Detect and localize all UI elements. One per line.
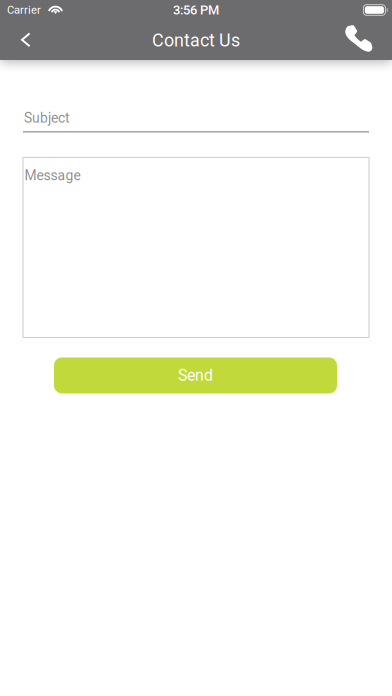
button[interactable]: Send: [54, 357, 337, 393]
staticText: Contact Us: [152, 30, 240, 51]
button[interactable]: Back: [2, 20, 40, 60]
staticText: Subject: [24, 110, 70, 126]
staticText: Message: [24, 167, 80, 184]
staticText: Carrier: [7, 3, 41, 16]
button[interactable]: Call: [344, 20, 388, 60]
staticText: Send: [178, 366, 213, 385]
staticText: 3:56 PM: [173, 3, 219, 18]
